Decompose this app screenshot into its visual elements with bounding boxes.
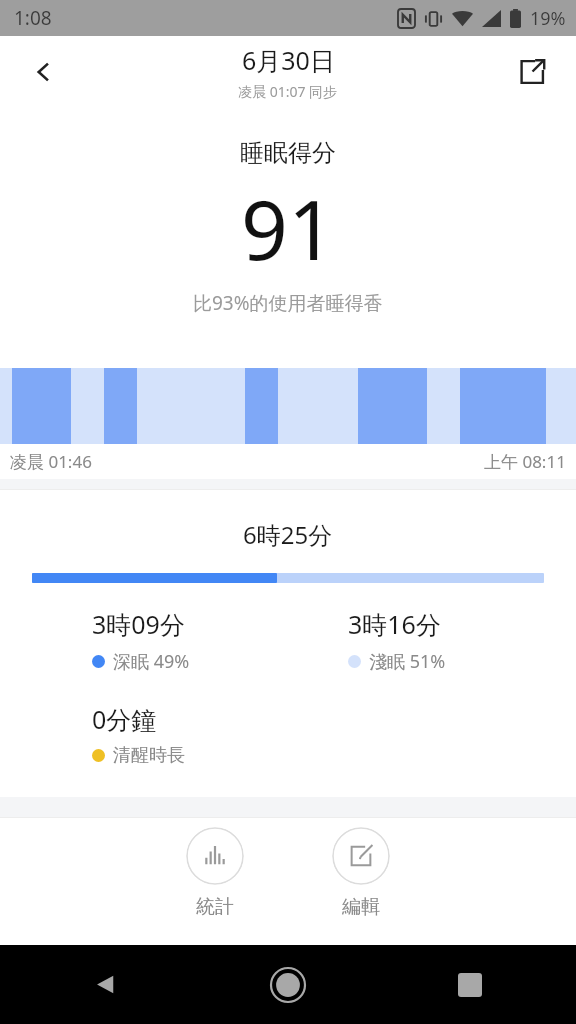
staticText: 凌晨 01:07 同步 bbox=[238, 82, 338, 101]
staticText: 6時25分 bbox=[243, 518, 333, 551]
button[interactable]: Back bbox=[20, 48, 68, 96]
staticText: 19% bbox=[530, 6, 566, 31]
staticText: 6月30日 bbox=[242, 43, 335, 77]
staticText: 凌晨 01:46 bbox=[10, 450, 92, 473]
staticText: 1:08 bbox=[14, 5, 52, 31]
staticText: 3時16分 bbox=[348, 607, 441, 641]
staticText: 清醒時長 bbox=[113, 744, 185, 767]
button[interactable]: 統計 bbox=[178, 823, 252, 923]
staticText: 比93%的使用者睡得香 bbox=[193, 290, 383, 316]
button[interactable]: Home bbox=[192, 945, 384, 1024]
staticText: 淺眠 51% bbox=[369, 649, 446, 674]
staticText: 91 bbox=[241, 172, 335, 284]
staticText: 深眠 49% bbox=[113, 649, 190, 674]
button[interactable]: Back bbox=[0, 945, 192, 1024]
staticText: 0分鐘 bbox=[92, 702, 157, 736]
staticText: 統計 bbox=[196, 895, 234, 919]
button[interactable]: 編輯 bbox=[324, 823, 398, 923]
staticText: 3時09分 bbox=[92, 607, 185, 641]
button[interactable]: Share bbox=[508, 48, 556, 96]
staticText: 睡眠得分 bbox=[240, 138, 336, 168]
button[interactable]: Recent apps bbox=[384, 945, 576, 1024]
staticText: 編輯 bbox=[342, 895, 380, 919]
staticText: 上午 08:11 bbox=[484, 450, 566, 473]
